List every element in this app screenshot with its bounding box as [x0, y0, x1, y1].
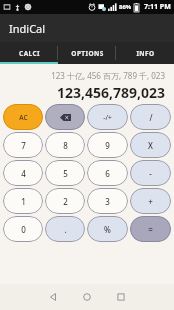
button[interactable]: 5: [45, 160, 85, 186]
staticText: 123,456,789,023: [56, 83, 165, 102]
button[interactable]: 8: [45, 132, 85, 158]
staticText: 9: [105, 140, 110, 151]
staticText: 3: [105, 196, 110, 207]
button[interactable]: 3: [87, 188, 128, 214]
staticText: 7: [21, 140, 26, 151]
button[interactable]: %: [87, 216, 128, 242]
staticText: CALCI: [19, 49, 40, 58]
button[interactable]: .: [45, 216, 85, 242]
staticText: =: [148, 224, 153, 235]
staticText: 86%: [119, 3, 132, 11]
button[interactable]: CALCI: [0, 42, 58, 64]
button[interactable]: INFO: [116, 42, 174, 64]
button[interactable]: OPTIONS: [58, 42, 116, 64]
staticText: OPTIONS: [71, 49, 104, 58]
staticText: .: [64, 224, 67, 235]
button[interactable]: =: [130, 216, 171, 242]
button[interactable]: Backspace: [45, 104, 85, 130]
staticText: 4: [21, 168, 26, 179]
staticText: 2: [63, 196, 68, 207]
staticText: 5: [63, 168, 68, 179]
staticText: 6: [105, 168, 110, 179]
button[interactable]: AC: [3, 104, 43, 130]
button[interactable]: 0: [3, 216, 43, 242]
staticText: +: [148, 196, 153, 207]
staticText: 8: [63, 140, 68, 151]
staticText: INFO: [136, 49, 155, 58]
button[interactable]: 2: [45, 188, 85, 214]
button[interactable]: 6: [87, 160, 128, 186]
staticText: X: [148, 140, 153, 151]
button[interactable]: Recent apps: [104, 284, 138, 310]
staticText: -/+: [103, 113, 112, 122]
button[interactable]: 7: [3, 132, 43, 158]
staticText: -: [149, 168, 152, 179]
button[interactable]: 1: [3, 188, 43, 214]
staticText: 1: [21, 196, 26, 207]
staticText: 7:11 PM: [144, 2, 171, 12]
staticText: %: [104, 224, 111, 235]
button[interactable]: Back: [36, 284, 70, 310]
button[interactable]: Home: [70, 284, 104, 310]
button[interactable]: -/+: [87, 104, 128, 130]
staticText: 0: [21, 224, 26, 235]
button[interactable]: +: [130, 188, 171, 214]
button[interactable]: 4: [3, 160, 43, 186]
button[interactable]: 9: [87, 132, 128, 158]
button[interactable]: /: [130, 104, 171, 130]
staticText: 123 十亿, 456 百万, 789 千, 023: [51, 70, 165, 81]
staticText: AC: [19, 113, 28, 122]
staticText: IndiCal: [9, 21, 46, 36]
button[interactable]: X: [130, 132, 171, 158]
staticText: /: [149, 112, 153, 123]
button[interactable]: -: [130, 160, 171, 186]
